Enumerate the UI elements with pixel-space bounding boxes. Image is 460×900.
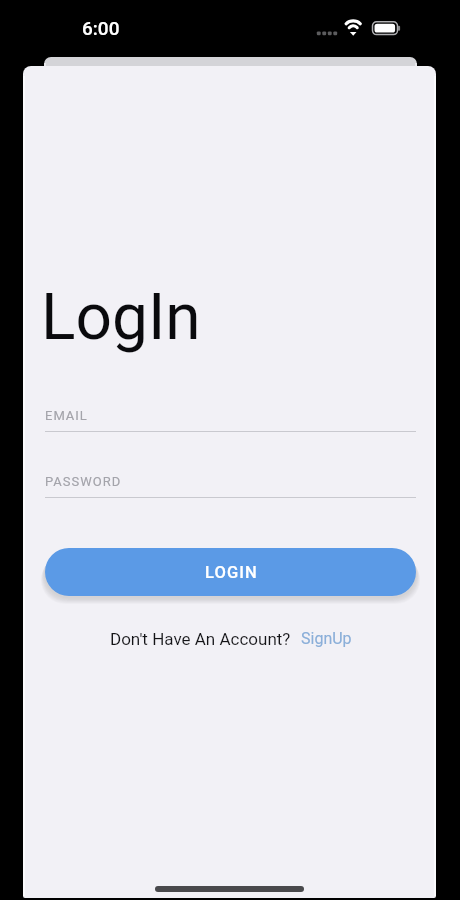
staticText: EMAIL	[45, 408, 88, 423]
other: Status icons	[315, 16, 403, 38]
button[interactable]: EMAIL	[45, 408, 416, 432]
button[interactable]: SignUp	[297, 626, 356, 651]
button[interactable]: LOGIN	[45, 548, 416, 596]
staticText: Don't Have An Account?	[110, 629, 291, 649]
staticText: SignUp	[301, 629, 352, 648]
staticText: PASSWORD	[45, 474, 122, 489]
staticText: LogIn	[41, 280, 201, 355]
staticText: LOGIN	[205, 563, 258, 582]
staticText: 6:00	[82, 17, 120, 39]
button[interactable]: PASSWORD	[45, 474, 416, 498]
